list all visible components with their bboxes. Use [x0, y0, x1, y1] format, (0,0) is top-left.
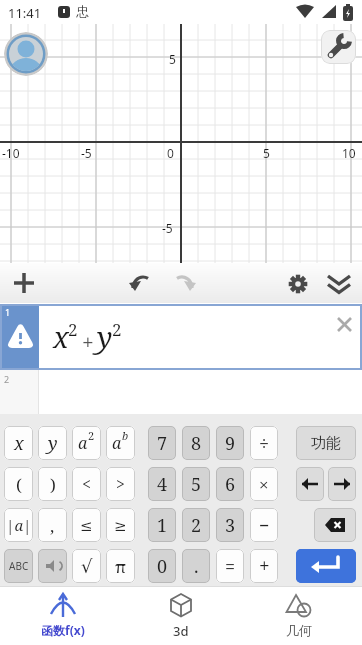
button[interactable]: 2: [182, 508, 210, 542]
staticText: 功能: [311, 434, 341, 453]
button[interactable]: [6, 265, 42, 301]
staticText: 11:41: [8, 4, 42, 22]
button[interactable]: ≤: [72, 508, 101, 542]
staticText: =: [225, 554, 236, 579]
staticText: 函数f(x): [41, 622, 85, 638]
button[interactable]: (: [4, 467, 33, 501]
staticText: +: [82, 328, 94, 357]
button[interactable]: 5: [182, 467, 210, 501]
button[interactable]: ): [38, 467, 67, 501]
button[interactable]: ×: [250, 467, 278, 501]
button[interactable]: a: [106, 426, 135, 460]
staticText: a: [78, 432, 88, 454]
staticText: 3d: [173, 622, 189, 640]
staticText: ): [50, 473, 56, 496]
button[interactable]: [328, 467, 356, 501]
button[interactable]: =: [216, 549, 244, 583]
button[interactable]: [4, 32, 48, 76]
button[interactable]: 8: [182, 426, 210, 460]
staticText: .: [194, 554, 199, 579]
staticText: >: [116, 473, 125, 495]
staticText: 7: [157, 431, 168, 456]
button[interactable]: 6: [216, 467, 244, 501]
button[interactable]: √: [72, 549, 101, 583]
staticText: π: [115, 555, 127, 578]
staticText: y: [97, 317, 113, 356]
staticText: |a|: [6, 515, 32, 535]
staticText: ABC: [9, 559, 29, 573]
button[interactable]: ABC: [4, 549, 33, 583]
staticText: 2: [88, 428, 95, 443]
staticText: 5: [191, 472, 202, 497]
staticText: y: [48, 431, 58, 456]
button[interactable]: ,: [38, 508, 67, 542]
button[interactable]: [334, 314, 356, 336]
button[interactable]: [38, 549, 67, 583]
staticText: 5: [263, 145, 270, 161]
button[interactable]: [127, 265, 159, 297]
button[interactable]: +: [250, 549, 278, 583]
staticText: 3: [225, 513, 236, 538]
staticText: 8: [191, 431, 202, 456]
button[interactable]: x: [4, 426, 33, 460]
staticText: 10: [342, 145, 356, 161]
staticText: 1: [5, 306, 11, 318]
button[interactable]: [282, 267, 314, 299]
button[interactable]: 3d: [126, 593, 236, 640]
staticText: ×: [259, 473, 269, 496]
staticText: ≥: [114, 517, 127, 534]
staticText: 几何: [286, 622, 312, 638]
staticText: ,: [50, 514, 55, 537]
button[interactable]: 1: [0, 304, 362, 370]
button[interactable]: [166, 265, 198, 297]
staticText: +: [259, 553, 270, 579]
staticText: a: [112, 432, 122, 454]
button[interactable]: a: [72, 426, 101, 460]
button[interactable]: |a|: [4, 508, 33, 542]
button[interactable]: ≥: [106, 508, 135, 542]
button[interactable]: 4: [148, 467, 176, 501]
staticText: 2: [112, 318, 122, 341]
button[interactable]: <: [72, 467, 101, 501]
staticText: 2: [191, 513, 202, 538]
button[interactable]: 2: [0, 370, 362, 414]
button[interactable]: 0: [148, 549, 176, 583]
button[interactable]: [321, 30, 356, 64]
staticText: 5: [169, 51, 176, 67]
button[interactable]: −: [250, 508, 278, 542]
staticText: 4: [157, 472, 168, 497]
button[interactable]: 7: [148, 426, 176, 460]
button[interactable]: [314, 508, 356, 542]
staticText: 6: [225, 472, 236, 497]
staticText: 0: [157, 554, 168, 579]
staticText: ÷: [259, 431, 270, 456]
staticText: √: [81, 556, 93, 577]
button[interactable]: π: [106, 549, 135, 583]
staticText: (: [16, 473, 22, 496]
button[interactable]: [296, 467, 324, 501]
button[interactable]: >: [106, 467, 135, 501]
staticText: <: [82, 473, 91, 495]
staticText: 忠: [76, 3, 89, 19]
staticText: 2: [4, 373, 10, 385]
staticText: b: [122, 428, 129, 443]
staticText: -10: [2, 145, 20, 161]
button[interactable]: 功能: [296, 426, 356, 460]
button[interactable]: [322, 267, 356, 301]
button[interactable]: 1: [148, 508, 176, 542]
staticText: -5: [162, 220, 173, 236]
button[interactable]: 3: [216, 508, 244, 542]
staticText: 9: [225, 431, 236, 456]
staticText: 0: [167, 145, 174, 161]
button[interactable]: y: [38, 426, 67, 460]
staticText: 1: [157, 513, 168, 538]
button[interactable]: ÷: [250, 426, 278, 460]
button[interactable]: [296, 549, 356, 583]
staticText: x: [14, 431, 24, 456]
button[interactable]: 几何: [244, 593, 354, 638]
staticText: x: [53, 317, 69, 356]
button[interactable]: .: [182, 549, 210, 583]
staticText: ≤: [80, 517, 93, 534]
button[interactable]: 函数f(x): [8, 593, 118, 638]
button[interactable]: 9: [216, 426, 244, 460]
